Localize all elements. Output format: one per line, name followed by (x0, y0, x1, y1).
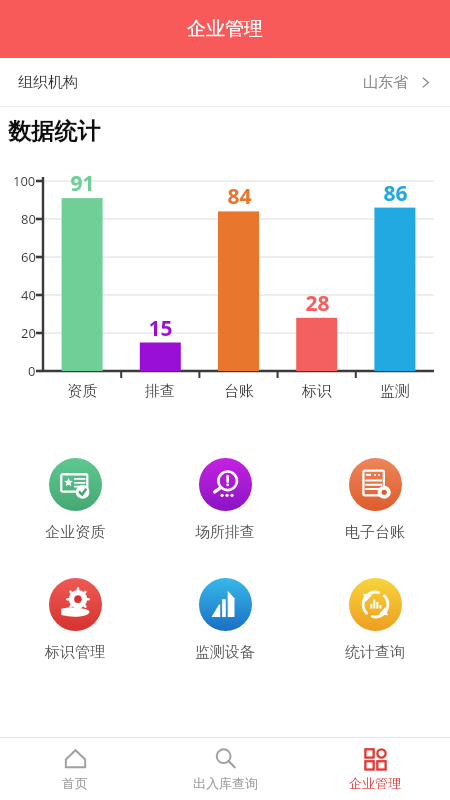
other: 首页 (64, 747, 87, 770)
staticText: 标识 (302, 382, 332, 401)
staticText: 标识管理 (45, 643, 105, 662)
staticText: 资质 (67, 382, 97, 401)
staticText: 86 (383, 179, 408, 208)
button[interactable]: 首页 (0, 738, 150, 800)
staticText: 出入库查询 (193, 775, 258, 791)
button[interactable]: 监测设备 (150, 575, 300, 665)
staticText: 山东省 (363, 73, 408, 92)
button[interactable]: 电子台账 (300, 455, 450, 545)
staticText: 企业管理 (349, 775, 401, 791)
button[interactable]: 组织机构 (0, 58, 450, 106)
staticText: 80 (21, 210, 36, 228)
staticText: 0 (28, 362, 36, 380)
staticText: 20 (21, 324, 36, 342)
staticText: 首页 (62, 775, 88, 791)
button[interactable]: 企业管理 (300, 738, 450, 800)
button[interactable]: 企业资质 (0, 455, 150, 545)
staticText: 84 (227, 182, 252, 211)
staticText: 100 (13, 172, 36, 190)
button[interactable]: 标识管理 (0, 575, 150, 665)
staticText: 60 (21, 248, 36, 266)
staticText: 数据统计 (8, 117, 100, 146)
staticText: 场所排查 (195, 523, 255, 542)
staticText: 排查 (145, 382, 175, 401)
button[interactable]: 出入库查询 (150, 738, 300, 800)
button[interactable]: 统计查询 (300, 575, 450, 665)
staticText: 电子台账 (345, 523, 405, 542)
staticText: 28 (305, 289, 330, 318)
other: 出入库查询 (214, 747, 237, 770)
staticText: 15 (148, 314, 173, 343)
staticText: 监测 (380, 382, 410, 401)
staticText: 组织机构 (18, 73, 78, 92)
staticText: 企业管理 (187, 17, 263, 41)
staticText: 统计查询 (345, 643, 405, 662)
staticText: 监测设备 (195, 643, 255, 662)
staticText: 91 (70, 169, 95, 198)
staticText: 40 (21, 286, 36, 304)
other: 企业管理 (364, 747, 387, 770)
staticText: 台账 (224, 382, 254, 401)
staticText: 企业资质 (45, 523, 105, 542)
button[interactable]: 场所排查 (150, 455, 300, 545)
